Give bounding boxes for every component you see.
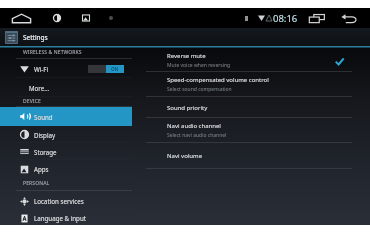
staticText: WIRELESS & NETWORKS (23, 49, 82, 56)
button[interactable]: Language & input (0, 211, 132, 225)
button[interactable]: Reverse mute (132, 48, 370, 72)
staticText: 08:16 (273, 12, 298, 25)
staticText: Speed-compensated volume control (167, 76, 269, 84)
button[interactable]: Wi-Fi (0, 59, 132, 78)
staticText: Sound priority (167, 104, 208, 112)
staticText: Location services (34, 197, 84, 205)
staticText: ON (111, 66, 119, 72)
button[interactable]: ON (88, 65, 124, 73)
button[interactable]: Storage (0, 143, 132, 160)
staticText: Select sound compensation (167, 86, 232, 93)
staticText: Display (34, 131, 56, 139)
staticText: Storage (34, 148, 57, 156)
button[interactable]: Brightness (50, 11, 64, 25)
button[interactable]: Sound (0, 107, 132, 126)
button[interactable]: Sound priority (132, 97, 370, 118)
button[interactable]: Settings (5, 31, 54, 44)
button[interactable]: Recent apps (307, 11, 326, 25)
staticText: Sound (34, 113, 53, 121)
button[interactable]: Navi volume (132, 143, 370, 169)
staticText: Select navi audio channel (167, 132, 227, 139)
button[interactable]: Home (10, 11, 32, 25)
staticText: Navi volume (167, 152, 203, 160)
staticText: Apps (34, 165, 49, 173)
staticText: DEVICE (23, 98, 41, 105)
button[interactable]: Navi audio channel (132, 118, 370, 143)
button[interactable]: Display (0, 126, 132, 143)
button[interactable]: More... (0, 78, 132, 97)
button[interactable]: Back (339, 11, 358, 25)
staticText: Navi audio channel (167, 122, 221, 130)
staticText: PERSONAL (23, 180, 50, 187)
staticText: Language & input (34, 214, 86, 222)
staticText: Reverse mute (167, 52, 206, 60)
staticText: Mute voice when reversing (167, 62, 231, 69)
button[interactable]: Apps (0, 160, 132, 178)
staticText: More... (29, 84, 50, 92)
button[interactable]: Wallpaper (79, 11, 93, 25)
staticText: Wi-Fi (34, 65, 49, 73)
button[interactable]: Location services (0, 191, 132, 211)
button[interactable]: Menu (106, 13, 116, 23)
staticText: Settings (23, 33, 48, 42)
button[interactable]: Speed-compensated volume control (132, 72, 370, 97)
